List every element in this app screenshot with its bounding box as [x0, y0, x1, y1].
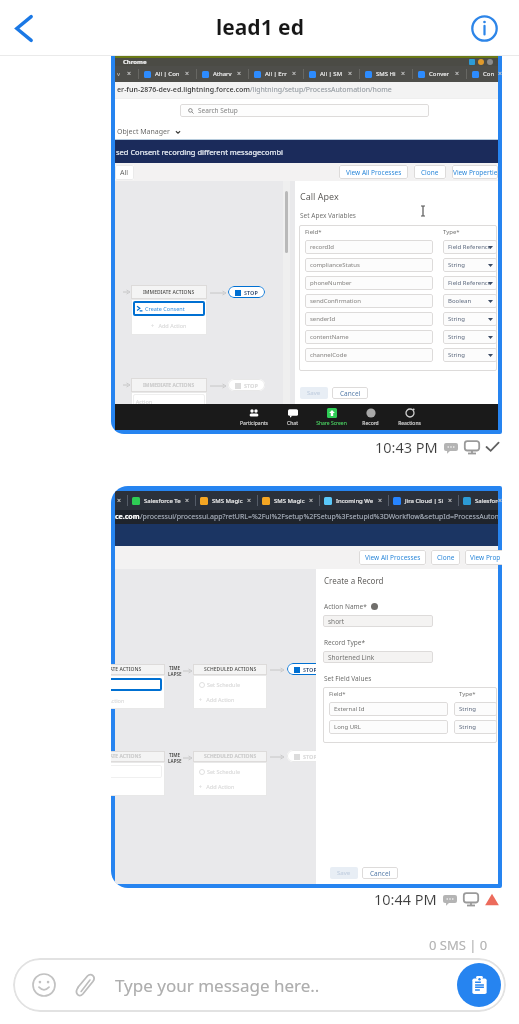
staticText: IMMEDIATE ACTIONS	[143, 382, 195, 389]
staticText: Participants	[240, 420, 268, 427]
staticText: Share Screen	[316, 420, 347, 427]
staticText: Set Schedule	[207, 681, 241, 688]
staticText: sendConfirmation	[310, 297, 361, 305]
staticText: Search Setup	[198, 106, 238, 115]
staticText: + Add Action	[196, 783, 235, 790]
staticText: ce.com	[115, 512, 140, 522]
staticText: Set Schedule	[207, 768, 241, 775]
button[interactable]: Templates	[457, 963, 501, 1007]
staticText: recordId	[310, 243, 335, 251]
staticText: String	[448, 261, 465, 269]
staticText: All | SM	[320, 70, 343, 78]
staticText: ×	[348, 69, 353, 79]
staticText: + Add Action	[196, 696, 235, 703]
staticText: All	[120, 168, 129, 178]
staticText: ×	[292, 69, 297, 79]
staticText: View Prop	[470, 553, 501, 562]
staticText: SCHEDULED ACTIONS	[204, 666, 257, 673]
staticText: Set Apex Variables	[300, 211, 356, 220]
staticText: ×	[237, 69, 242, 79]
staticText: Type your message here..	[115, 974, 320, 997]
staticText: Set Field Values	[324, 674, 372, 683]
staticText: All | Err	[265, 70, 287, 78]
staticText: View All Processes	[365, 553, 421, 562]
staticText: String	[448, 315, 465, 323]
staticText: String	[459, 705, 476, 713]
staticText: 10:44 PM	[374, 889, 437, 909]
staticText: Jira Cloud | Si	[405, 497, 444, 505]
staticText: ×	[378, 496, 383, 506]
button[interactable]: Attach file	[67, 968, 101, 1002]
staticText: Long URL	[334, 723, 361, 731]
button[interactable]: Chrome	[111, 56, 502, 434]
staticText: Record Type*	[324, 638, 366, 647]
staticText: Action	[111, 697, 125, 704]
staticText: Record	[362, 420, 379, 427]
staticText: Object Manager	[117, 127, 170, 137]
staticText: Field*	[329, 690, 459, 698]
staticText: complianceStatus	[310, 261, 360, 269]
staticText: STOP	[244, 382, 258, 389]
staticText: String	[448, 333, 465, 341]
staticText: + Add Action	[151, 322, 187, 329]
staticText: channelCode	[310, 351, 347, 359]
staticText: LAPSE	[168, 758, 182, 764]
staticText: All | Con	[155, 70, 180, 78]
staticText: STOP	[303, 666, 317, 673]
staticText: lead1 ed	[216, 13, 304, 42]
staticText: 0 SMS | 0	[429, 936, 488, 954]
staticText: Chrome	[123, 58, 147, 66]
button[interactable]: ×	[111, 486, 502, 888]
staticText: Save	[307, 389, 321, 397]
staticText: Field Reference	[448, 243, 492, 251]
staticText: Conver	[429, 70, 450, 78]
staticText: Clone	[421, 168, 439, 177]
button[interactable]: Emoji	[27, 968, 61, 1002]
staticText: Atharv	[213, 70, 232, 78]
staticText: SMS Magic	[212, 497, 243, 505]
staticText: ×	[455, 69, 460, 79]
staticText: Cancel	[340, 389, 361, 398]
button[interactable]: Info	[464, 8, 504, 48]
staticText: ×	[185, 496, 190, 506]
staticText: Field*	[305, 228, 443, 236]
staticText: Con	[483, 70, 495, 78]
staticText: TIME	[169, 665, 181, 671]
staticText: ×	[185, 69, 190, 79]
staticText: ×	[309, 496, 314, 506]
staticText: Cancel	[370, 869, 391, 878]
staticText: View All Processes	[346, 168, 402, 177]
button[interactable]: Back	[0, 4, 48, 52]
staticText: ×	[448, 496, 453, 506]
staticText: Type*	[443, 228, 460, 236]
staticText: STOP	[244, 289, 258, 296]
staticText: Action Name*	[324, 602, 367, 611]
staticText: /lightning/setup/ProcessAutomation/home	[250, 85, 392, 95]
staticText: v	[117, 70, 121, 78]
staticText: LAPSE	[168, 671, 182, 677]
staticText: sed Consent recording different messagec…	[116, 147, 284, 157]
staticText: IMMEDIATE ACTIONS	[111, 753, 142, 760]
staticText: 10:43 PM	[375, 437, 438, 457]
staticText: ×	[401, 69, 406, 79]
staticText: contentName	[310, 333, 349, 341]
staticText: Shortened Link	[328, 653, 375, 662]
staticText: Boolean	[448, 297, 472, 305]
staticText: Salesforce Te	[144, 497, 181, 505]
staticText: View Propertie	[453, 168, 498, 177]
staticText: IMMEDIATE ACTIONS	[111, 666, 142, 673]
staticText: Clone	[437, 553, 455, 562]
staticText: Incoming We	[336, 497, 374, 505]
staticText: Field Reference	[448, 279, 492, 287]
staticText: SMS Magic	[274, 497, 305, 505]
staticText: er-fun-2876-dev-ed.lightning.force.com	[117, 85, 250, 95]
staticText: TIME	[169, 752, 181, 758]
staticText: Create Consent	[145, 305, 185, 312]
staticText: STOP	[303, 753, 317, 760]
staticText: ×	[127, 69, 132, 79]
staticText: Reactions	[398, 420, 421, 427]
staticText: SCHEDULED ACTIONS	[204, 753, 257, 760]
staticText: Action	[133, 398, 153, 405]
staticText: Create a Record	[324, 575, 384, 586]
staticText: Salesforce	[475, 497, 498, 505]
